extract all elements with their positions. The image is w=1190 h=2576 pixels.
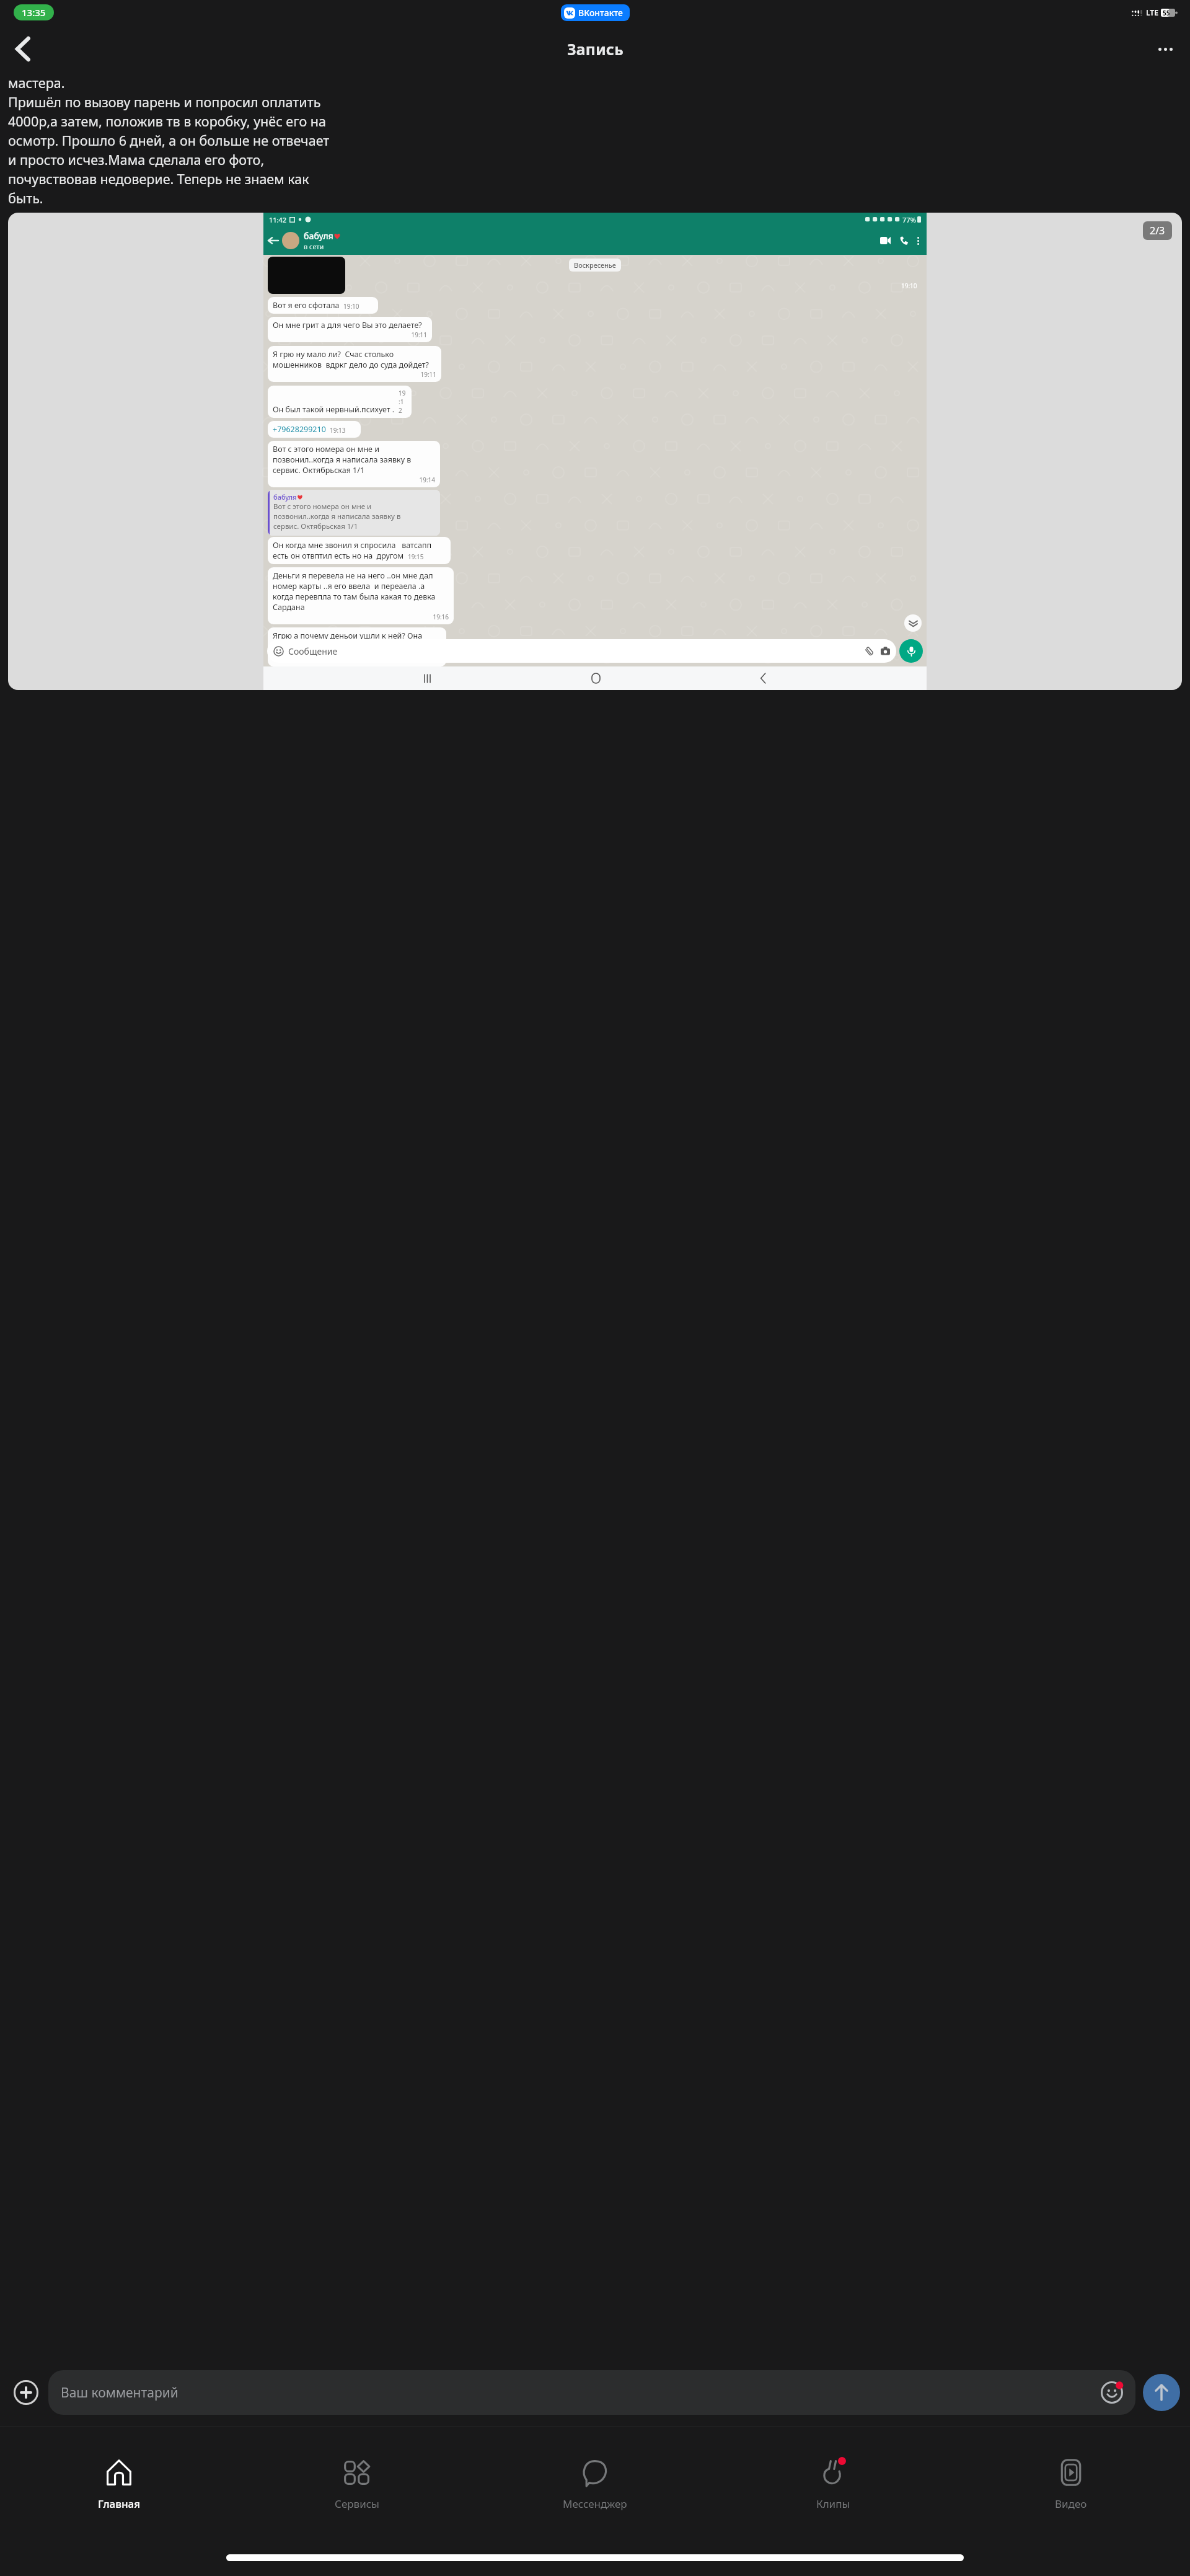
staticText: 4000р,а затем, положив тв в коробку, унё… xyxy=(8,112,326,130)
button[interactable]: More options xyxy=(1148,32,1183,66)
staticText: Ягрю а почему деньои ушли к ней? Она xyxy=(273,631,423,641)
staticText: осмотр. Прошло 6 дней, а он больше не от… xyxy=(8,131,330,149)
staticText: сервис. Октябрьская 1/1 xyxy=(273,465,365,476)
button[interactable]: Send xyxy=(1143,2374,1180,2411)
staticText: 11:42 xyxy=(269,215,287,224)
staticText: Сообщение xyxy=(288,645,338,657)
button[interactable]: Вот я его сфотала xyxy=(268,297,378,314)
staticText: Деньги я перевела не на него ..он мне да… xyxy=(273,570,433,581)
staticText: и просто исчез.Мама сделала его фото, xyxy=(8,151,265,169)
staticText: Я грю ну мало ли? Счас столько xyxy=(273,349,394,360)
staticText: 77% xyxy=(902,215,916,224)
staticText: 19:14 xyxy=(273,476,435,484)
staticText: номер карты ..я его ввела и переаела .а xyxy=(273,581,425,591)
staticText: Пришёл по вызову парень и попросил оплат… xyxy=(8,93,321,111)
staticText: 19:13 xyxy=(330,426,346,435)
staticText: почувствовав недоверие. Теперь не знаем … xyxy=(8,170,309,188)
staticText: сервис. Октябрьская 1/1 xyxy=(273,521,358,531)
button[interactable]: Он когда мне звонил я спросила ватсапп xyxy=(268,537,451,564)
button[interactable]: Ваш комментарий xyxy=(48,2370,1135,2415)
staticText: Вот с этого номера он мне и xyxy=(273,444,380,454)
staticText: 19:11 xyxy=(273,330,427,339)
button[interactable]: Он мне грит а для чего Вы это делаете? xyxy=(268,317,432,342)
staticText: Главная xyxy=(98,2497,141,2511)
staticText: Клипы xyxy=(816,2497,850,2511)
staticText: позвонил..когда я написала заявку в xyxy=(273,511,401,521)
staticText: 19:12 xyxy=(399,389,407,415)
staticText: Вот я его сфотала xyxy=(273,300,340,311)
button[interactable]: Attach xyxy=(10,2376,42,2409)
button[interactable]: Деньги я перевела не на него ..он мне да… xyxy=(268,567,454,624)
staticText: бабуля xyxy=(304,230,333,242)
staticText: мошенников вдркг дело до суда дойдет? xyxy=(273,360,429,370)
staticText: Сардана xyxy=(273,602,305,613)
button[interactable]: Клипы xyxy=(714,2427,952,2539)
staticText: Он мне грит а для чего Вы это делаете? xyxy=(273,320,422,330)
staticText: в сети xyxy=(304,242,324,251)
staticText: Ваш комментарий xyxy=(61,2384,178,2402)
staticText: позвонил..когда я написала заявку в xyxy=(273,454,412,465)
staticText: 55 xyxy=(1163,9,1170,17)
staticText: мастера. xyxy=(8,74,65,92)
button[interactable]: Сервисы xyxy=(238,2427,476,2539)
staticText: 19:11 xyxy=(273,370,436,379)
button[interactable]: Главная xyxy=(0,2427,238,2539)
staticText: быть. xyxy=(8,189,43,207)
staticText: Сервисы xyxy=(335,2497,380,2511)
staticText: 19:10 xyxy=(343,302,359,311)
staticText: есть он отвптил есть но на другом xyxy=(273,551,404,561)
staticText: бабуля xyxy=(273,492,297,502)
staticText: Он был такой нервный.психует . xyxy=(273,404,395,415)
staticText: 19:10 xyxy=(901,281,917,290)
staticText: Воскресенье xyxy=(574,260,616,270)
staticText: 13:35 xyxy=(22,6,46,19)
staticText: Вот с этого номера он мне и xyxy=(273,502,372,511)
staticText: Видео xyxy=(1055,2497,1087,2511)
staticText: Сбербанк? А у меня Тинькофф xyxy=(273,652,391,662)
staticText: Запись xyxy=(567,38,624,60)
staticText: 19:15 xyxy=(408,552,424,561)
staticText: 2/3 xyxy=(1150,224,1165,237)
button[interactable]: +79628299210 xyxy=(268,421,361,438)
button[interactable]: Мессенджер xyxy=(476,2427,714,2539)
staticText: Он когда мне звонил я спросила ватсапп xyxy=(273,540,432,551)
button[interactable]: Scroll to bottom xyxy=(904,614,922,632)
staticText: Мессенджер xyxy=(563,2497,627,2511)
button[interactable]: Back xyxy=(6,32,41,66)
staticText: кто?? Он грит это моя подруга .. у вас ж… xyxy=(273,641,425,652)
button[interactable]: Сообщение xyxy=(267,639,896,663)
staticText: 19:16 xyxy=(273,613,449,621)
button[interactable]: Voice message xyxy=(899,639,923,663)
staticText: ВКонтакте xyxy=(578,7,623,19)
button[interactable]: Я грю ну мало ли? Счас столько xyxy=(268,346,441,382)
staticText: LTE xyxy=(1146,7,1158,17)
staticText: когда перевпла то там была какая то девк… xyxy=(273,591,436,602)
staticText: +79628299210 xyxy=(273,424,326,435)
button[interactable]: Ягрю а почему деньои ушли к ней? Она xyxy=(268,627,446,666)
button[interactable]: 11:42 xyxy=(8,213,1182,690)
button[interactable]: Видео xyxy=(952,2427,1190,2539)
button[interactable]: Вот с этого номера он мне и xyxy=(268,441,440,487)
button[interactable]: Он был такой нервный.психует . xyxy=(268,386,412,418)
